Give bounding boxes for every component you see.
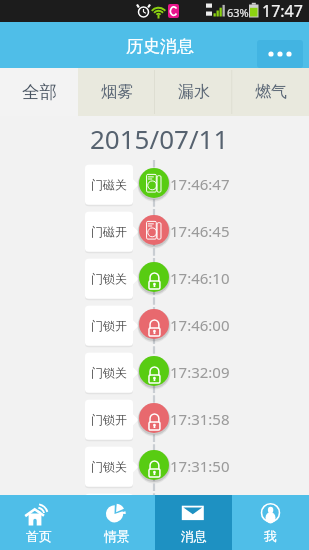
button[interactable]: 消息 <box>155 495 232 550</box>
staticText: 门锁关 <box>91 365 127 380</box>
button[interactable]: 我 <box>232 495 309 550</box>
staticText: 消息 <box>181 528 207 544</box>
staticText: 门锁开 <box>91 318 127 333</box>
staticText: 门锁关 <box>91 459 127 474</box>
button[interactable]: 门磁关 <box>0 164 309 211</box>
button[interactable]: 燃气 <box>232 68 309 116</box>
staticText: 情景 <box>104 528 130 544</box>
button[interactable]: 首页 <box>0 495 78 550</box>
button[interactable]: 门锁开 <box>0 399 309 446</box>
button[interactable]: More options <box>257 40 303 68</box>
staticText: 我 <box>264 528 277 544</box>
staticText: 全部 <box>22 81 57 103</box>
staticText: 门锁开 <box>91 506 127 521</box>
button[interactable]: 漏水 <box>155 68 232 116</box>
staticText: 17:46:10 <box>170 268 230 288</box>
staticText: 63% <box>227 5 249 20</box>
button[interactable]: 门锁开 <box>0 305 309 352</box>
staticText: 17:31:58 <box>170 409 230 429</box>
staticText: 燃气 <box>255 82 287 102</box>
button[interactable]: 烟雾 <box>78 68 155 116</box>
button[interactable]: 全部 <box>0 68 78 116</box>
staticText: 17:31:50 <box>170 456 230 476</box>
staticText: 门磁开 <box>91 224 127 239</box>
button[interactable]: 门锁关 <box>0 352 309 399</box>
staticText: 门磁关 <box>91 177 127 192</box>
button[interactable]: 门锁关 <box>0 446 309 493</box>
staticText: 门锁关 <box>91 271 127 286</box>
staticText: 17:31:44 <box>170 503 230 523</box>
button[interactable]: 情景 <box>78 495 155 550</box>
button[interactable]: 门锁开 <box>0 493 309 540</box>
staticText: 17:32:09 <box>170 362 230 382</box>
staticText: 漏水 <box>178 82 210 102</box>
staticText: 17:46:00 <box>170 315 230 335</box>
staticText: 17:46:47 <box>170 174 230 194</box>
staticText: 历史消息 <box>126 36 194 57</box>
staticText: 门锁开 <box>91 412 127 427</box>
staticText: 17:46:45 <box>170 221 230 241</box>
staticText: 17:47 <box>262 0 303 22</box>
staticText: 烟雾 <box>101 82 133 102</box>
staticText: 2015/07/11 <box>90 121 229 156</box>
staticText: 首页 <box>26 528 52 544</box>
button[interactable]: 门锁关 <box>0 258 309 305</box>
button[interactable]: 门磁开 <box>0 211 309 258</box>
